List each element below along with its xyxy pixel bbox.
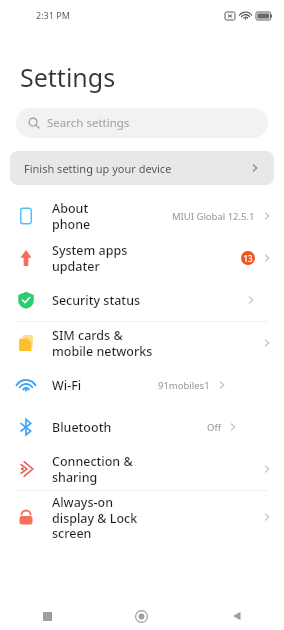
staticText: Finish setting up your device xyxy=(24,161,172,176)
staticText: Off xyxy=(207,421,221,434)
button[interactable]: Recent apps xyxy=(0,602,94,630)
button[interactable]: Bluetooth xyxy=(0,406,284,448)
staticText: MIUI Global 12.5.1 xyxy=(172,210,255,223)
button[interactable]: System apps updater xyxy=(0,237,284,279)
button[interactable]: Finish setting up your device xyxy=(10,151,274,185)
staticText: About phone xyxy=(52,200,112,232)
staticText: 2:31 PM xyxy=(36,9,70,21)
staticText: Connection & sharing xyxy=(52,453,157,485)
button[interactable]: Wi-Fi xyxy=(0,364,284,406)
button[interactable]: SIM cards & mobile networks xyxy=(0,322,284,364)
staticText: SIM cards & mobile networks xyxy=(52,327,157,359)
staticText: 13 xyxy=(243,253,253,264)
staticText: 91mobiles1 xyxy=(158,379,210,392)
button[interactable]: Always-on display & Lock screen xyxy=(0,491,284,543)
staticText: Security status xyxy=(52,292,141,309)
button[interactable]: Search settings xyxy=(16,108,268,138)
staticText: Wi-Fi xyxy=(52,377,82,394)
staticText: System apps updater xyxy=(52,242,146,274)
staticText: Settings xyxy=(20,60,116,94)
button[interactable]: Connection & sharing xyxy=(0,448,284,490)
button[interactable]: Back xyxy=(189,602,284,630)
staticText: Search settings xyxy=(47,115,130,131)
staticText: Always-on display & Lock screen xyxy=(52,494,157,541)
button[interactable]: About phone xyxy=(0,195,284,237)
button[interactable]: Home xyxy=(94,602,189,630)
button[interactable]: Security status xyxy=(0,279,284,321)
staticText: Bluetooth xyxy=(52,419,112,436)
